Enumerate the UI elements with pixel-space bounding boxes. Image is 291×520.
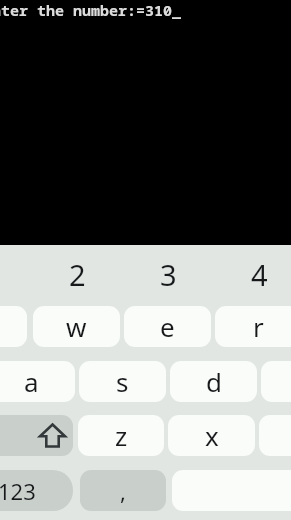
- button[interactable]: e: [124, 306, 211, 347]
- staticText: s: [116, 364, 129, 399]
- button[interactable]: q: [0, 306, 27, 347]
- button[interactable]: d: [170, 361, 257, 402]
- button[interactable]: c: [259, 415, 291, 456]
- staticText: e: [160, 309, 175, 344]
- staticText: 3: [160, 255, 177, 294]
- button[interactable]: 123: [0, 470, 73, 511]
- staticText: ,: [120, 476, 126, 506]
- button[interactable]: Shift: [0, 415, 73, 456]
- button[interactable]: r: [215, 306, 291, 347]
- button[interactable]: w: [33, 306, 120, 347]
- staticText: r: [253, 309, 264, 344]
- button[interactable]: z: [78, 415, 164, 456]
- button[interactable]: 4: [229, 246, 289, 302]
- staticText: w: [66, 309, 87, 344]
- staticText: d: [206, 364, 222, 399]
- button[interactable]: s: [79, 361, 166, 402]
- staticText: 2: [69, 255, 86, 294]
- button[interactable]: ,: [80, 470, 166, 511]
- button[interactable]: f: [261, 361, 291, 402]
- staticText: x: [205, 418, 219, 453]
- button[interactable]: 2: [47, 246, 107, 302]
- button[interactable]: x: [168, 415, 255, 456]
- staticText: nter the number:=310_: [0, 0, 182, 20]
- staticText: 4: [251, 255, 268, 294]
- button[interactable]: a: [0, 361, 75, 402]
- staticText: z: [115, 418, 128, 453]
- staticText: 123: [0, 476, 36, 506]
- button[interactable]: 3: [138, 246, 198, 302]
- staticText: a: [24, 364, 39, 399]
